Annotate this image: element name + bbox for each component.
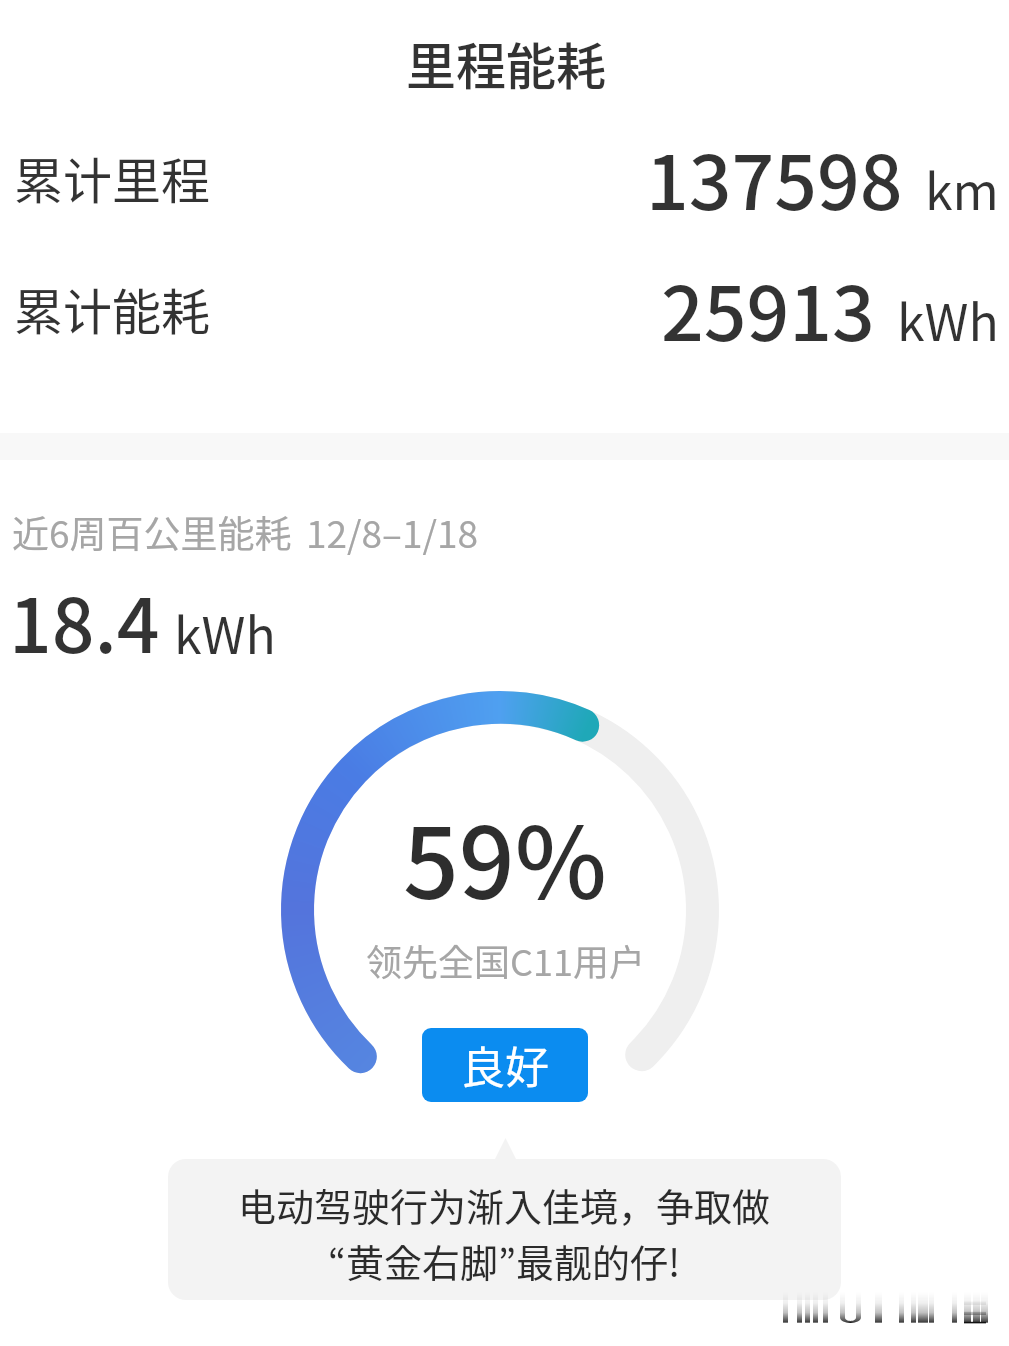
staticText: km — [925, 152, 999, 224]
staticText: 良好 — [461, 1033, 549, 1097]
staticText: 12/8–1/18 — [306, 505, 479, 559]
staticText: kWh — [174, 596, 276, 668]
staticText: 25913 — [661, 254, 875, 363]
button[interactable]: 良好 — [422, 1028, 588, 1102]
staticText: “黄金右脚”最靓的仔! — [328, 1233, 681, 1288]
staticText: kWh — [897, 283, 999, 355]
staticText: 累计里程 — [14, 142, 211, 213]
staticText: 累计能耗 — [14, 273, 211, 344]
staticText: 领先全国C11用户 — [366, 934, 645, 986]
staticText: 里程能耗 — [406, 27, 606, 99]
staticText: 电动驾驶行为渐入佳境，争取做 — [238, 1177, 771, 1232]
staticText: 59% — [403, 785, 607, 927]
staticText: 18.4 — [9, 566, 160, 675]
staticText: 近6周百公里能耗 — [12, 505, 292, 559]
staticText: 137598 — [646, 123, 903, 232]
